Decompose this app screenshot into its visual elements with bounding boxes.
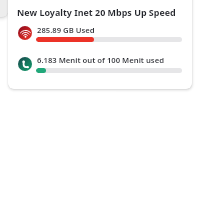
- staticText: 285.89 GB Used: [37, 25, 95, 35]
- button[interactable]: New Loyalty Inet 20 Mbps Up Speed: [8, 0, 192, 89]
- button[interactable]: Data usage: [18, 26, 32, 40]
- staticText: 6.183 Menit out of 100 Menit used: [37, 55, 164, 65]
- button[interactable]: Call minutes: [18, 57, 32, 71]
- staticText: New Loyalty Inet 20 Mbps Up Speed: [17, 6, 176, 18]
